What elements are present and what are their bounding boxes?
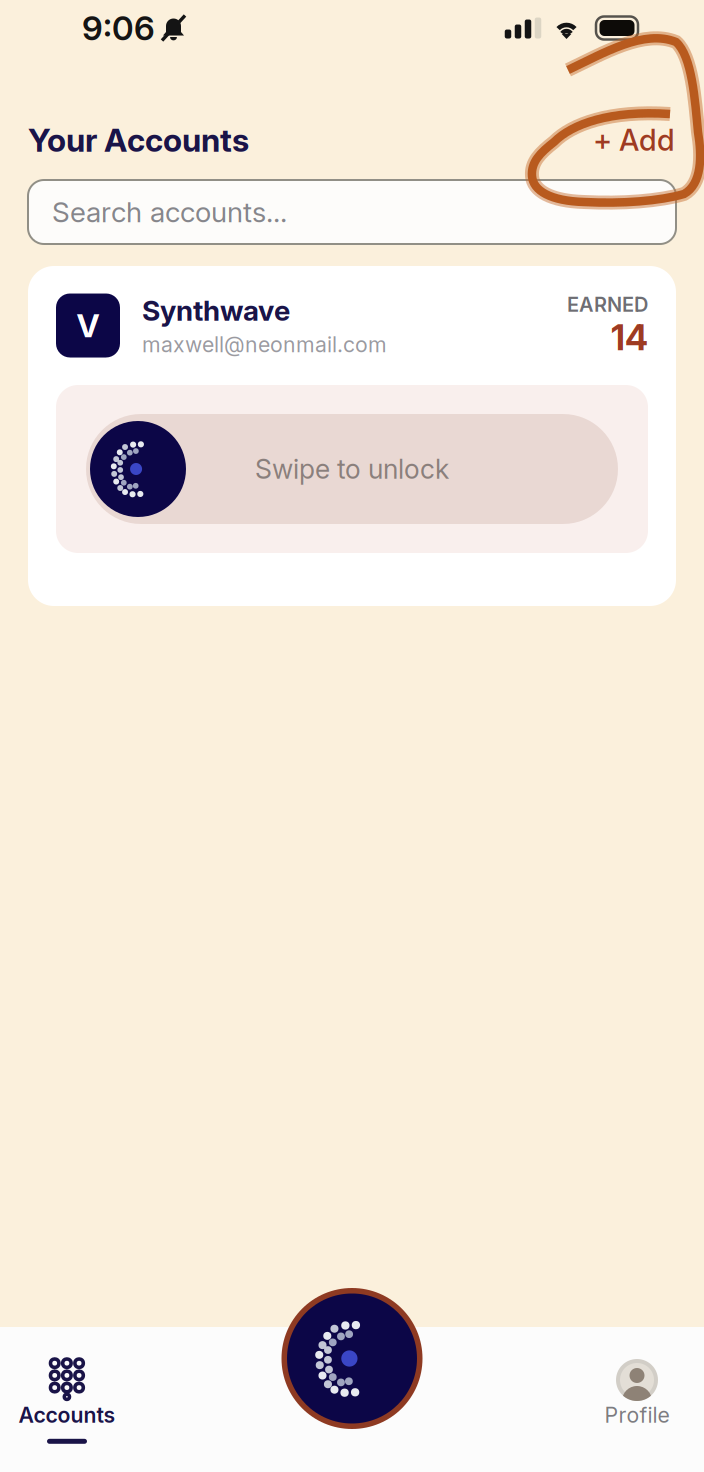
staticText: EARNED <box>567 292 648 317</box>
staticText: + Add <box>593 122 675 158</box>
staticText: Search accounts... <box>52 195 287 229</box>
button[interactable]: + Add <box>593 114 675 166</box>
staticText: V <box>76 306 99 345</box>
staticText: Accounts <box>18 1402 115 1428</box>
button[interactable]: Profile <box>570 1359 704 1472</box>
button[interactable]: Accounts <box>0 1359 134 1472</box>
staticText: Synthwave <box>142 294 290 328</box>
button[interactable]: Search accounts... <box>28 180 676 244</box>
staticText: Your Accounts <box>28 121 249 159</box>
staticText: 14 <box>611 317 648 358</box>
staticText: Swipe to unlock <box>255 453 449 485</box>
staticText: 9:06 <box>82 8 155 48</box>
button[interactable]: Scan <box>281 1288 422 1429</box>
staticText: Profile <box>604 1402 669 1428</box>
staticText: maxwell@neonmail.com <box>142 331 387 357</box>
